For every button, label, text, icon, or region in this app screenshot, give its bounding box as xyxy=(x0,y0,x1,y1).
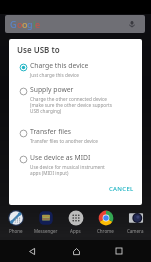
staticText: o xyxy=(22,18,27,30)
staticText: G xyxy=(10,18,17,30)
staticText: Use device for musical instrument xyxy=(30,164,105,170)
button[interactable]: Back xyxy=(21,240,43,262)
staticText: Charge the other connected device xyxy=(30,96,107,102)
staticText: Messenger xyxy=(34,228,58,234)
button[interactable]: Phone xyxy=(2,210,29,234)
staticText: Use device as MIDI xyxy=(30,153,91,162)
button[interactable]: G xyxy=(5,15,145,33)
button[interactable]: CANCEL xyxy=(105,183,138,195)
staticText: Transfer files to another device xyxy=(30,138,98,144)
button[interactable]: Messenger xyxy=(32,210,59,234)
button[interactable]: Charge this device xyxy=(9,61,142,78)
staticText: Phone xyxy=(9,228,23,234)
button[interactable]: Home xyxy=(65,240,87,262)
staticText: Charge this device xyxy=(30,61,89,70)
staticText: Apps xyxy=(70,228,81,234)
button[interactable]: Supply power xyxy=(9,85,142,114)
button[interactable]: Use device as MIDI xyxy=(9,153,142,176)
staticText: USB charging) xyxy=(30,108,62,114)
staticText: Just charge this device xyxy=(30,72,79,78)
staticText: Supply power xyxy=(30,85,74,94)
staticText: Chrome xyxy=(97,228,114,234)
staticText: l xyxy=(33,18,35,30)
staticText: Transfer files xyxy=(30,127,72,136)
button[interactable]: Transfer files xyxy=(9,127,142,144)
button[interactable]: Recent apps xyxy=(108,240,130,262)
staticText: CANCEL xyxy=(109,185,134,193)
staticText: (make sure the other device supports xyxy=(30,102,113,108)
staticText: apps (MIDI input) xyxy=(30,170,69,176)
button[interactable]: Camera xyxy=(122,210,149,234)
staticText: o xyxy=(17,18,22,30)
staticText: Use USB to xyxy=(17,44,60,55)
button[interactable]: Chrome xyxy=(92,210,119,234)
staticText: e xyxy=(35,18,40,30)
staticText: g xyxy=(27,18,33,30)
button[interactable]: Apps xyxy=(62,210,89,234)
staticText: Camera xyxy=(127,228,144,234)
other: Voice search xyxy=(128,20,136,28)
